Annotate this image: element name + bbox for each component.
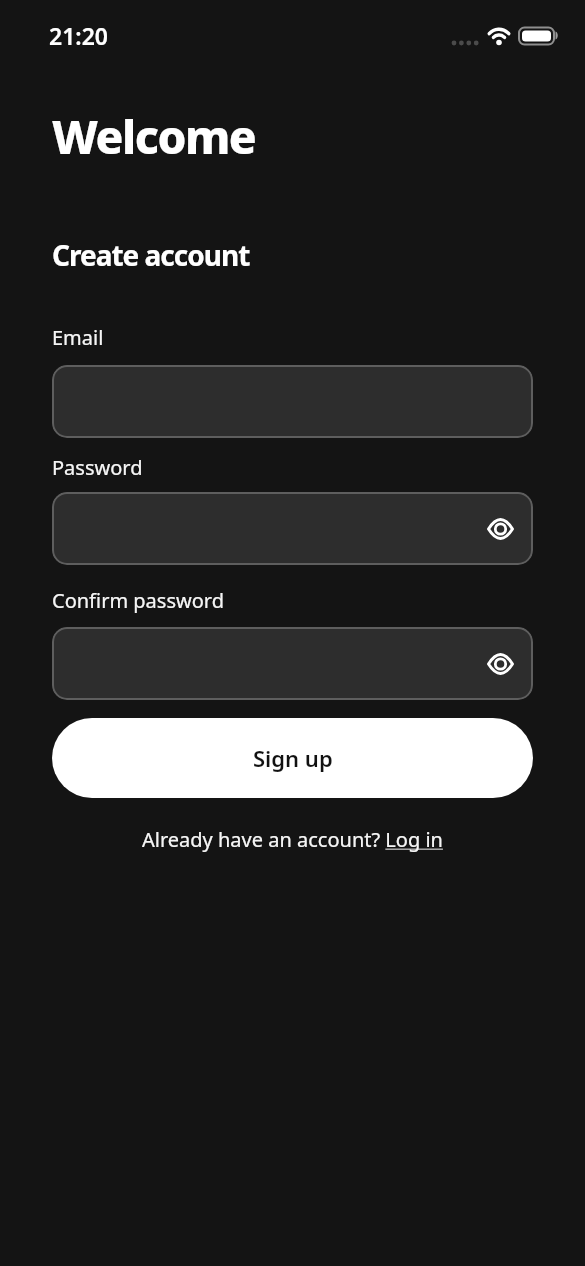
staticText: Sign up <box>253 743 333 773</box>
staticText: Password <box>52 454 143 481</box>
button[interactable]: Already have an account? Log in <box>0 826 585 853</box>
staticText: 21:20 <box>49 20 108 51</box>
button[interactable] <box>52 365 533 438</box>
staticText: Create account <box>52 236 250 274</box>
staticText: Email <box>52 324 104 351</box>
staticText: Confirm password <box>52 587 224 614</box>
button[interactable] <box>52 492 533 565</box>
button[interactable] <box>52 627 533 700</box>
staticText: Welcome <box>52 105 256 168</box>
staticText: Already have an account? Log in <box>142 826 443 853</box>
button[interactable]: Sign up <box>52 718 533 798</box>
